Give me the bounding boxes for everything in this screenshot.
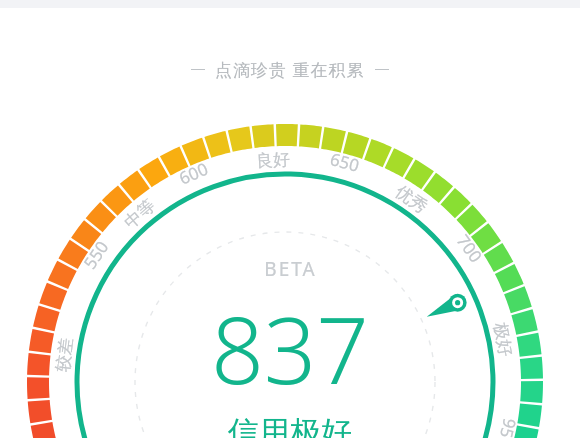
staticText: 信用极好 <box>228 413 352 438</box>
staticText: 点滴珍贵 重在积累 <box>215 58 365 81</box>
button[interactable]: Credit score gauge 837 <box>0 0 580 438</box>
staticText: 837 <box>211 286 369 411</box>
staticText: BETA <box>264 256 317 282</box>
